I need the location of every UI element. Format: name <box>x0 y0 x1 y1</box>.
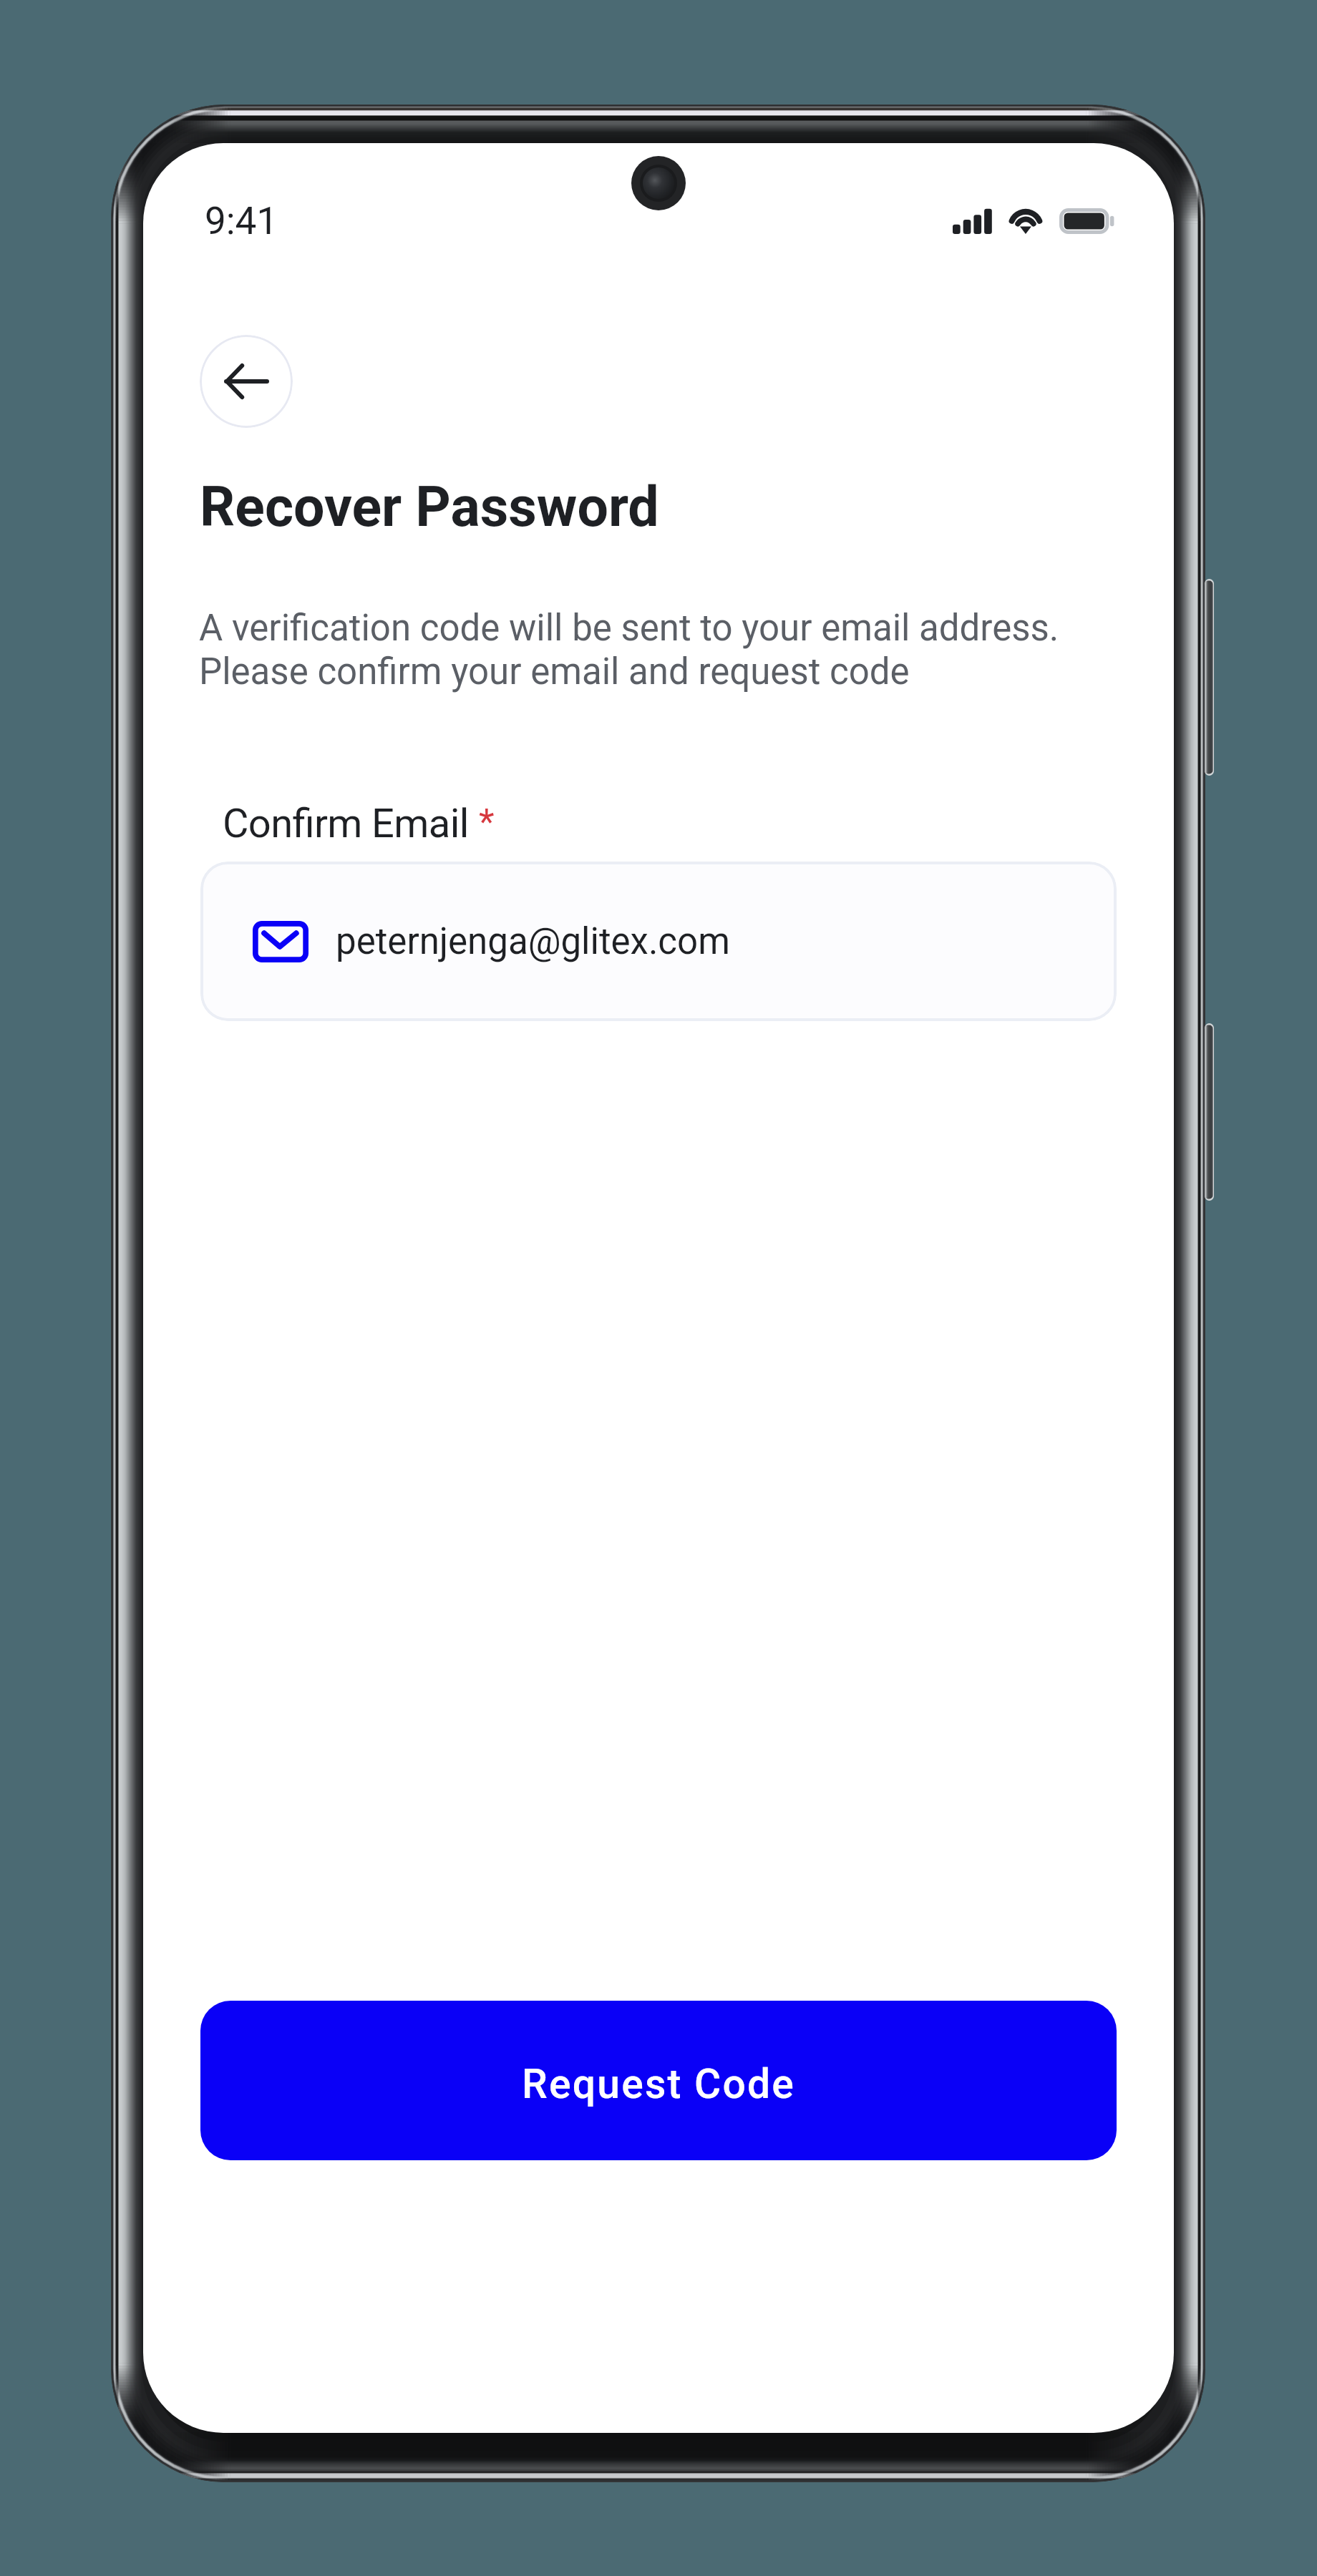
staticText: * <box>479 801 495 844</box>
staticText: Request Code <box>522 2060 795 2108</box>
button[interactable]: Back <box>200 335 293 428</box>
button[interactable]: Request Code <box>200 2001 1117 2160</box>
staticText: Confirm Email <box>223 800 479 847</box>
button[interactable]: peternjenga@glitex.com <box>200 862 1117 1021</box>
staticText: peternjenga@glitex.com <box>336 920 730 963</box>
staticText: Recover Password <box>200 475 659 540</box>
staticText: A verification code will be sent to your… <box>199 607 1144 693</box>
staticText: 9:41 <box>205 199 278 243</box>
